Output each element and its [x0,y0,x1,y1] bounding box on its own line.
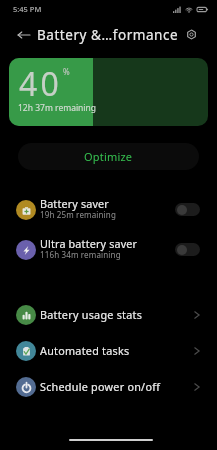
staticText: Optimize [84,149,133,164]
staticText: 12h 37m remaining [18,102,97,114]
staticText: % [63,66,70,77]
button[interactable]: Back [11,22,37,48]
button[interactable]: Optimize [18,143,199,170]
staticText: Ultra battery saver [40,236,138,251]
staticText: Battery usage stats [40,307,143,322]
staticText: 116h 34m remaining [40,249,121,260]
button[interactable]: Schedule power on/off [0,369,217,405]
button[interactable]: Battery usage stats [0,297,217,333]
button[interactable]: Automated tasks [0,333,217,369]
button[interactable]: Ultra battery saver [0,230,217,270]
staticText: 19h 25m remaining [40,209,116,220]
staticText: Battery &…formance [37,26,179,44]
button[interactable]: Battery saver [0,190,217,230]
staticText: 5:45 PM [13,4,42,14]
staticText: Schedule power on/off [40,379,161,394]
button[interactable]: Settings [178,21,204,47]
button[interactable]: Toggle Battery saver [175,203,200,216]
button[interactable]: 40 [9,58,208,126]
staticText: Automated tasks [40,343,130,358]
staticText: 40 [19,62,63,106]
staticText: Battery saver [40,196,109,211]
button[interactable]: Toggle Ultra battery saver [175,243,200,256]
